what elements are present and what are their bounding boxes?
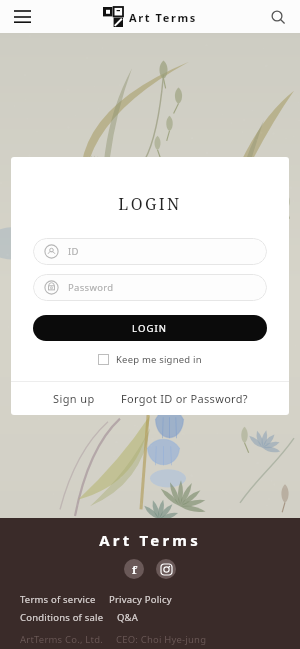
staticText: CEO: Choi Hye-jung bbox=[116, 633, 207, 646]
staticText: Terms of service bbox=[20, 593, 96, 606]
staticText: ID bbox=[68, 245, 79, 258]
staticText: Privacy Policy bbox=[109, 593, 172, 606]
button[interactable]: Facebook bbox=[124, 559, 144, 579]
staticText: f bbox=[132, 562, 137, 577]
button[interactable]: Q&A bbox=[117, 611, 139, 624]
button[interactable]: Art Terms bbox=[103, 7, 197, 27]
button[interactable]: Keep me signed in bbox=[11, 353, 289, 366]
button[interactable]: Instagram bbox=[156, 559, 176, 579]
staticText: Q&A bbox=[117, 611, 139, 624]
button[interactable]: Sign up bbox=[49, 386, 99, 411]
staticText: Conditions of sale bbox=[20, 611, 104, 624]
staticText: LOGIN bbox=[132, 322, 168, 335]
button[interactable]: Privacy Policy bbox=[109, 593, 172, 606]
staticText: LOGIN bbox=[11, 193, 289, 215]
button[interactable]: Password bbox=[33, 274, 267, 301]
button[interactable]: Conditions of sale bbox=[20, 611, 104, 624]
button[interactable]: ID bbox=[33, 238, 267, 265]
button[interactable]: Menu bbox=[8, 3, 36, 31]
staticText: ArtTerms Co., Ltd. bbox=[20, 633, 103, 646]
staticText: Forgot ID or Password? bbox=[121, 391, 248, 406]
staticText: Art Terms bbox=[129, 10, 197, 25]
button[interactable]: Search bbox=[264, 3, 292, 31]
staticText: Sign up bbox=[53, 391, 95, 406]
staticText: Art Terms bbox=[0, 530, 300, 550]
button[interactable]: Terms of service bbox=[20, 593, 96, 606]
button[interactable]: Forgot ID or Password? bbox=[117, 386, 252, 411]
staticText: Password bbox=[68, 281, 114, 294]
staticText: Keep me signed in bbox=[116, 353, 202, 366]
button[interactable]: LOGIN bbox=[33, 315, 267, 341]
